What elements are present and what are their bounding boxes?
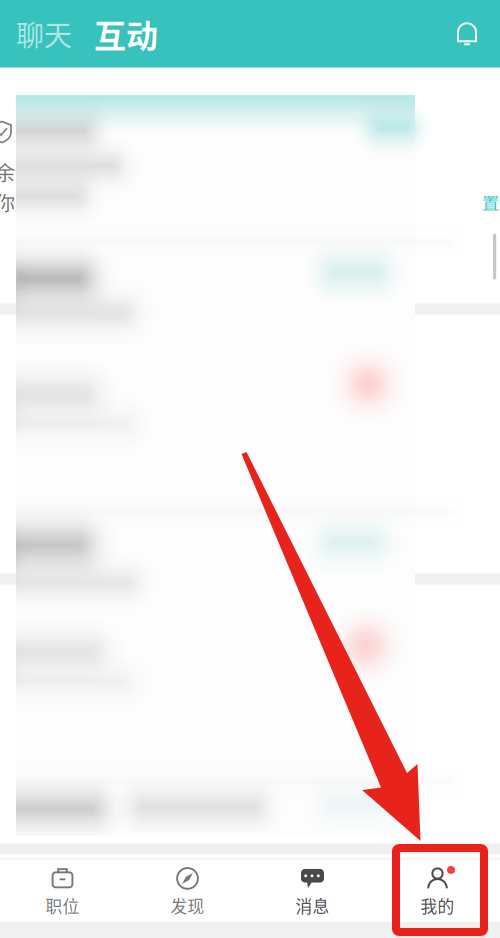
button[interactable]: 我的 bbox=[375, 857, 500, 924]
button[interactable]: 互动 bbox=[94, 3, 158, 65]
staticText: 你 bbox=[0, 187, 15, 216]
button[interactable]: 聊天 bbox=[16, 5, 72, 62]
button[interactable]: 发现 bbox=[125, 857, 250, 924]
staticText: 入槠科技 · 4轮 bbox=[18, 908, 151, 936]
staticText: 订单 收今 如门厂1 0如5叫5 bbox=[18, 889, 269, 916]
staticText: 我的 bbox=[420, 893, 454, 917]
button[interactable]: 消息 bbox=[250, 857, 375, 924]
staticText: 余 bbox=[0, 157, 15, 186]
staticText: 发现 bbox=[170, 893, 204, 917]
staticText: 互动 bbox=[94, 11, 158, 57]
staticText: 置顶 bbox=[482, 189, 500, 215]
staticText: 职位 bbox=[45, 893, 79, 917]
staticText: 聊天 bbox=[16, 13, 72, 54]
button[interactable]: 职位 bbox=[0, 857, 125, 924]
button[interactable]: Notifications bbox=[456, 21, 478, 47]
staticText: 消息 bbox=[295, 893, 329, 917]
